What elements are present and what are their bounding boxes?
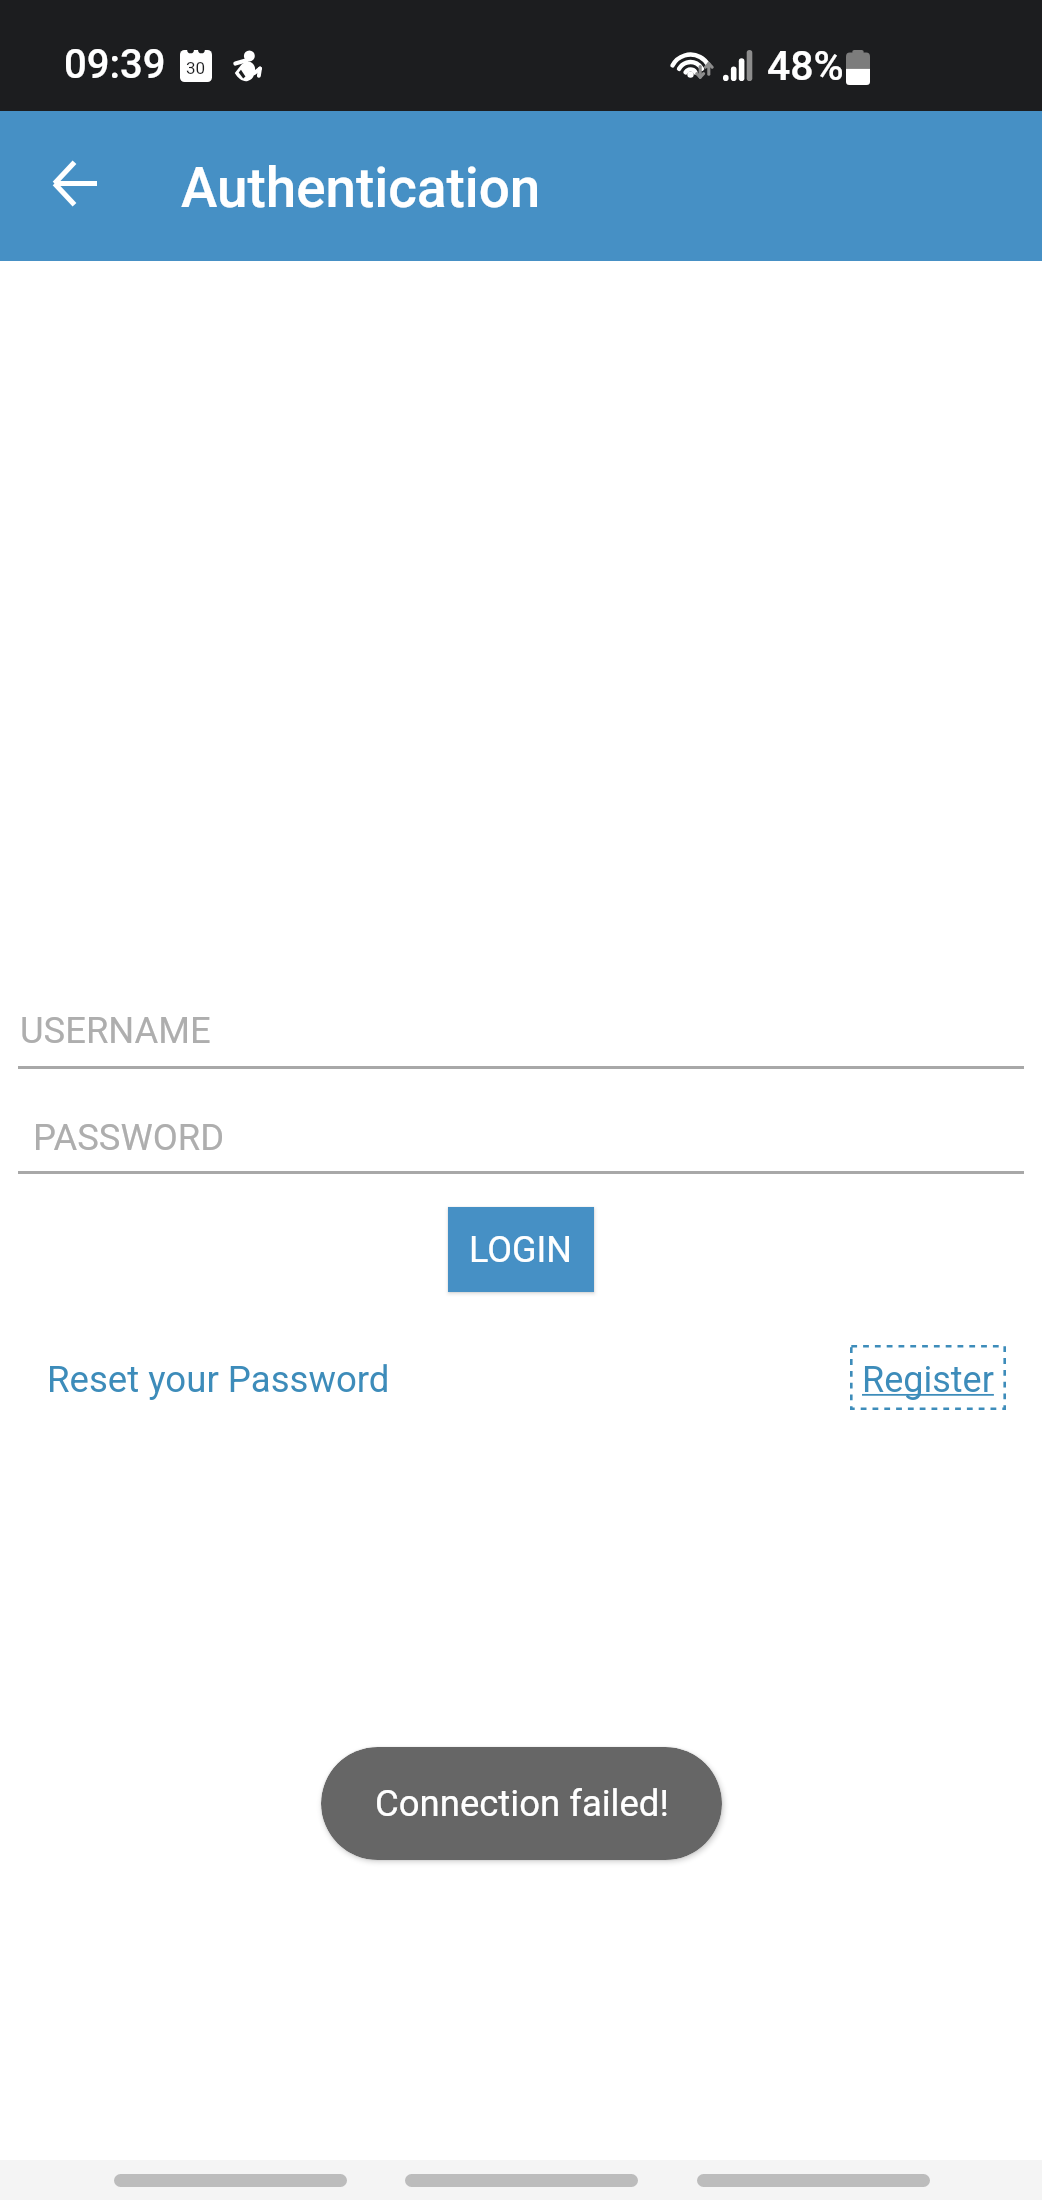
button[interactable]: PASSWORD [18, 1107, 1024, 1174]
button[interactable]: Back [28, 137, 120, 229]
staticText: Authentication [181, 156, 541, 220]
button[interactable]: Navigation [697, 2174, 930, 2187]
button[interactable]: LOGIN [448, 1207, 594, 1292]
button[interactable]: Navigation [114, 2174, 347, 2187]
staticText: Reset your Password [47, 1358, 390, 1401]
button[interactable]: USERNAME [18, 1000, 1024, 1069]
staticText: 09:39 [64, 41, 166, 88]
staticText: USERNAME [20, 1009, 211, 1052]
button[interactable]: Register [850, 1345, 1006, 1410]
staticText: 48% [767, 42, 844, 90]
staticText: PASSWORD [33, 1116, 225, 1159]
staticText: LOGIN [469, 1229, 573, 1271]
staticText: Register [862, 1359, 994, 1401]
staticText: Connection failed! [375, 1782, 669, 1825]
button[interactable]: Navigation [405, 2174, 638, 2187]
button[interactable]: Reset your Password [47, 1358, 390, 1401]
staticText: 30 [186, 58, 206, 78]
